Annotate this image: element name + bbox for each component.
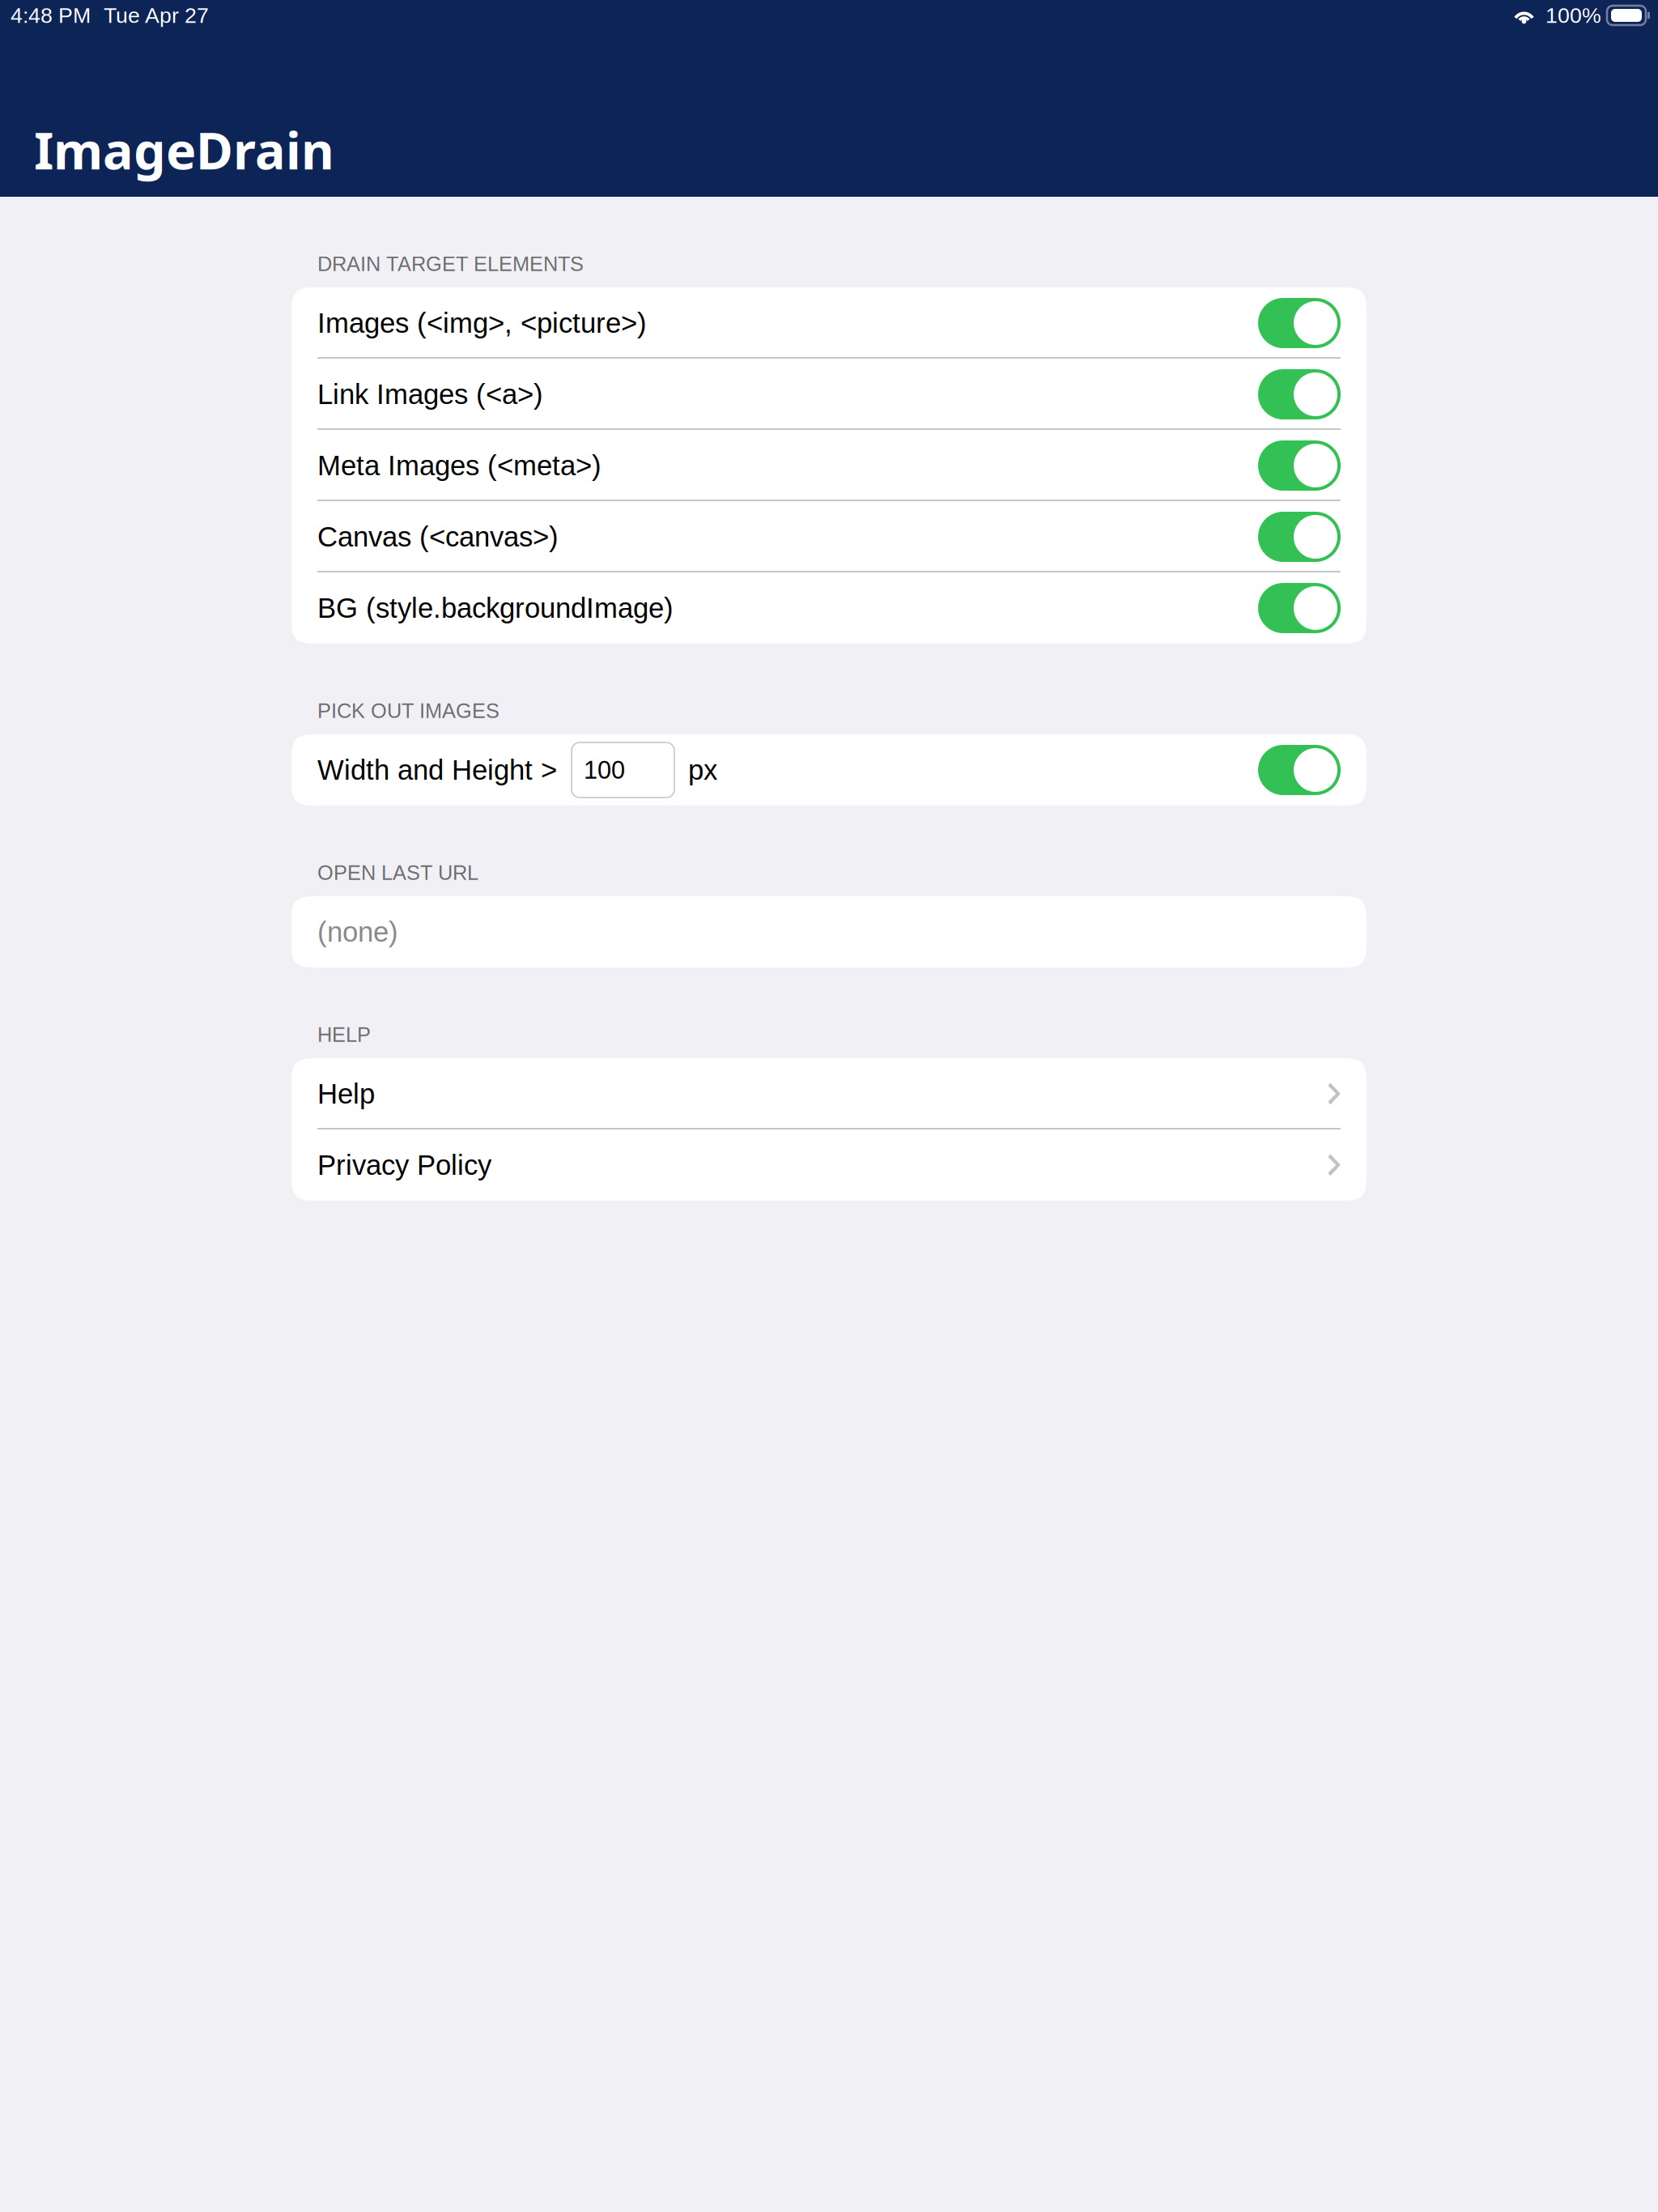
staticText: Link Images (<a>)	[317, 379, 543, 410]
button[interactable]: Help	[291, 1058, 1367, 1129]
button[interactable]: Privacy Policy	[291, 1129, 1367, 1201]
staticText: Help	[317, 1078, 375, 1109]
button[interactable]: Open last URL	[291, 896, 1367, 968]
staticText: PICK OUT IMAGES	[317, 699, 500, 722]
button[interactable]: BG (style.backgroundImage)	[291, 572, 1367, 644]
staticText: (none)	[317, 916, 398, 948]
staticText: Images (<img>, <picture>)	[317, 307, 647, 339]
staticText: px	[688, 754, 717, 786]
button[interactable]: Canvas (<canvas>)	[291, 501, 1367, 572]
staticText: OPEN LAST URL	[317, 861, 478, 884]
staticText: Tue Apr 27	[104, 3, 209, 27]
staticText: Meta Images (<meta>)	[317, 450, 602, 481]
button[interactable]: Width and Height minimum, 100 px	[291, 734, 1367, 806]
button[interactable]: Meta Images (<meta>)	[291, 430, 1367, 501]
staticText: ImageDrain	[34, 115, 334, 184]
staticText: HELP	[317, 1023, 371, 1046]
staticText: 100%	[1545, 3, 1601, 27]
staticText: BG (style.backgroundImage)	[317, 592, 674, 624]
staticText: Width and Height >	[317, 754, 557, 786]
staticText: Canvas (<canvas>)	[317, 521, 559, 552]
staticText: 4:48 PM	[11, 3, 91, 27]
staticText: DRAIN TARGET ELEMENTS	[317, 252, 584, 275]
button[interactable]: Link Images (<a>)	[291, 359, 1367, 430]
staticText: 100	[584, 756, 625, 784]
button[interactable]: Images (<img>, <picture>)	[291, 287, 1367, 359]
staticText: Privacy Policy	[317, 1149, 491, 1181]
